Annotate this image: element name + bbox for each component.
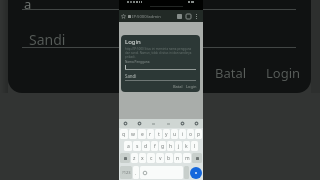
staticText: t	[158, 131, 160, 138]
button[interactable]: Modifier key	[120, 153, 130, 163]
staticText: d	[144, 143, 148, 150]
button[interactable]: j	[175, 141, 182, 151]
staticText: y	[165, 131, 168, 138]
staticText: Sandi	[29, 30, 66, 49]
staticText: Login	[186, 84, 197, 89]
staticText: Sandi	[125, 73, 137, 79]
button[interactable]: u	[171, 129, 178, 139]
button[interactable]: s	[133, 141, 141, 151]
staticText: p	[197, 131, 201, 138]
button[interactable]: Keyboard tool 2	[151, 121, 156, 126]
staticText: a	[24, 0, 32, 13]
staticText: c	[150, 155, 153, 162]
button[interactable]: Downloads	[177, 14, 182, 19]
staticText: h	[169, 143, 173, 150]
button[interactable]: m	[183, 153, 191, 163]
button[interactable]: q	[120, 129, 128, 139]
staticText: u	[173, 131, 177, 138]
staticText: l	[194, 143, 196, 150]
button[interactable]: Keyboard tool 5	[194, 121, 199, 126]
staticText: ?123	[122, 170, 131, 175]
staticText: IP:5000/admin	[132, 14, 161, 20]
button[interactable]: Enter	[190, 167, 202, 179]
button[interactable]: Bookmark	[121, 14, 126, 19]
button[interactable]: d	[142, 141, 150, 151]
staticText: j	[178, 143, 180, 150]
button[interactable]: Keyboard tool 1	[137, 121, 142, 126]
staticText: f	[154, 143, 156, 150]
button[interactable]: o	[187, 129, 194, 139]
button[interactable]: f	[151, 141, 158, 151]
button[interactable]: Login	[259, 59, 308, 87]
staticText: x	[141, 155, 144, 162]
button[interactable]: ?123	[120, 166, 132, 179]
button[interactable]: h	[167, 141, 174, 151]
button[interactable]: b	[165, 153, 173, 163]
button[interactable]: n	[174, 153, 182, 163]
staticText: v	[159, 155, 162, 162]
button[interactable]: Comma	[133, 166, 139, 179]
button[interactable]: Space	[140, 166, 183, 179]
staticText: n	[176, 155, 180, 162]
button[interactable]: Batal	[208, 59, 254, 87]
button[interactable]: Keyboard tool 3	[166, 121, 171, 126]
button[interactable]: v	[156, 153, 164, 163]
button[interactable]: y	[163, 129, 170, 139]
button[interactable]: r	[147, 129, 154, 139]
staticText: Login	[125, 38, 141, 46]
staticText: Nama Pengguna	[125, 60, 150, 64]
button[interactable]: g	[159, 141, 166, 151]
button[interactable]: l	[191, 141, 198, 151]
staticText: e	[141, 131, 144, 138]
staticText: s	[136, 143, 139, 150]
button[interactable]: Tabs	[186, 14, 191, 19]
staticText: Batal	[215, 64, 247, 82]
button[interactable]: i	[179, 129, 186, 139]
staticText: w	[131, 131, 135, 138]
staticText: ,	[135, 170, 137, 175]
button[interactable]: c	[147, 153, 155, 163]
staticText: o	[189, 131, 193, 138]
button[interactable]: Keyboard tool 0	[123, 121, 128, 126]
staticText: b	[167, 155, 171, 162]
staticText: i	[182, 131, 184, 138]
button[interactable]: Modifier key	[192, 153, 202, 163]
staticText: Login	[266, 64, 301, 82]
staticText: k	[185, 143, 188, 150]
staticText: http://IP:5000 Situs ini meminta nama pe…	[125, 47, 192, 51]
button[interactable]: Keyboard tool 4	[180, 121, 185, 126]
staticText: m	[185, 155, 190, 162]
staticText: z	[133, 155, 136, 162]
button[interactable]: e	[138, 129, 146, 139]
button[interactable]: k	[183, 141, 190, 151]
staticText: g	[161, 143, 165, 150]
staticText: a	[127, 143, 130, 150]
button[interactable]: a	[124, 141, 132, 151]
staticText: dan sandi. Namun, tidak di situs ini dan…	[125, 51, 192, 55]
button[interactable]: w	[129, 129, 137, 139]
staticText: r	[149, 131, 152, 138]
staticText: q	[122, 131, 126, 138]
button[interactable]: More options	[196, 14, 197, 19]
button[interactable]: z	[131, 153, 138, 163]
button[interactable]: p	[195, 129, 202, 139]
staticText: Batal	[173, 84, 183, 89]
button[interactable]: x	[139, 153, 146, 163]
button[interactable]: t	[155, 129, 162, 139]
staticText: pribadi.	[125, 55, 136, 59]
